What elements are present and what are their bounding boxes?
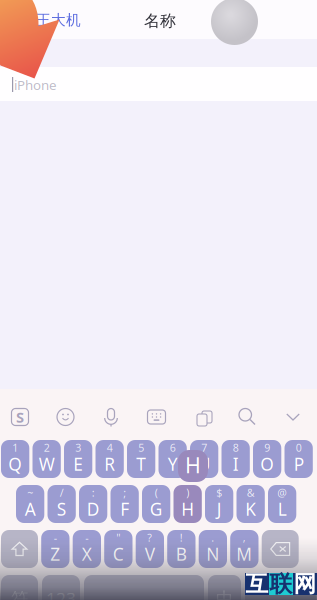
button[interactable]: & xyxy=(236,485,265,523)
button[interactable]: Keyboard tool xyxy=(6,405,34,429)
button[interactable]: ~ xyxy=(16,485,44,523)
staticText: 123 xyxy=(46,588,76,600)
staticText: 0 xyxy=(296,440,302,455)
button[interactable]: / xyxy=(47,485,76,523)
staticText: 4 xyxy=(107,440,113,455)
staticText: D xyxy=(87,498,100,521)
button[interactable]: Avatar xyxy=(211,0,258,45)
button[interactable]: 5 xyxy=(127,440,155,478)
button[interactable]: 4 xyxy=(95,440,124,478)
button[interactable]: Shift xyxy=(1,530,38,568)
staticText: X xyxy=(82,543,92,566)
staticText: 1 xyxy=(12,440,18,455)
button[interactable]: 9 xyxy=(253,440,281,478)
staticText: P xyxy=(294,453,304,476)
button[interactable]: 8 xyxy=(221,440,250,478)
staticText: ? xyxy=(147,530,152,545)
staticText: ) xyxy=(186,485,189,500)
button[interactable]: 3 xyxy=(64,440,92,478)
staticText: " xyxy=(116,530,120,545)
button[interactable]: " xyxy=(104,530,132,568)
button[interactable]: Keyboard tool xyxy=(279,405,307,429)
staticText: N xyxy=(206,543,219,566)
staticText: 符 xyxy=(11,588,28,600)
button[interactable]: ! xyxy=(167,530,195,568)
button[interactable]: - xyxy=(73,530,101,568)
staticText: 互 xyxy=(245,570,268,598)
staticText: 王大机 xyxy=(36,11,81,29)
staticText: I xyxy=(233,453,239,476)
button[interactable]: ; xyxy=(110,485,139,523)
button[interactable]: Keyboard tool xyxy=(51,405,79,429)
staticText: 网 xyxy=(293,570,316,598)
button[interactable]: , xyxy=(230,530,258,568)
staticText: Z xyxy=(50,543,60,566)
staticText: 7 xyxy=(201,440,207,455)
button[interactable]: 2 xyxy=(32,440,61,478)
button[interactable]: - xyxy=(41,530,69,568)
button[interactable]: 1 xyxy=(1,440,29,478)
staticText: H xyxy=(185,451,201,479)
staticText: 5 xyxy=(138,440,144,455)
staticText: K xyxy=(245,498,256,521)
staticText: ! xyxy=(180,530,183,545)
button[interactable]: 王大机 xyxy=(36,11,81,29)
staticText: M xyxy=(236,543,252,566)
button[interactable]: 6 xyxy=(158,440,187,478)
staticText: J xyxy=(217,498,222,521)
staticText: O xyxy=(260,453,274,476)
button[interactable]: Delete xyxy=(262,530,299,568)
staticText: S xyxy=(57,498,67,521)
staticText: T xyxy=(136,453,146,476)
button[interactable]: 0 xyxy=(284,440,313,478)
staticText: W xyxy=(39,453,55,476)
staticText: L xyxy=(278,498,287,521)
staticText: - xyxy=(54,530,57,545)
staticText: ( xyxy=(155,485,158,500)
button[interactable] xyxy=(208,575,241,600)
staticText: 8 xyxy=(233,440,239,455)
staticText: 中 xyxy=(216,588,233,600)
button[interactable]: ) xyxy=(173,485,202,523)
staticText: , xyxy=(243,530,246,545)
staticText: Y xyxy=(168,453,178,476)
staticText: S xyxy=(16,407,24,427)
staticText: & xyxy=(247,485,255,500)
staticText: 3 xyxy=(75,440,81,455)
button[interactable] xyxy=(1,575,38,600)
staticText: R xyxy=(104,453,115,476)
staticText: @ xyxy=(277,485,287,500)
staticText: V xyxy=(145,543,155,566)
staticText: U xyxy=(198,453,211,476)
staticText: A xyxy=(25,498,36,521)
button[interactable]: $ xyxy=(205,485,233,523)
button[interactable]: ? xyxy=(136,530,164,568)
staticText: 名称 xyxy=(144,11,176,31)
button[interactable]: @ xyxy=(268,485,296,523)
button[interactable] xyxy=(245,575,316,600)
button[interactable]: ( xyxy=(142,485,170,523)
button[interactable] xyxy=(84,575,204,600)
staticText: . xyxy=(211,530,214,545)
button[interactable]: . xyxy=(199,530,227,568)
staticText: C xyxy=(113,543,124,566)
staticText: 9 xyxy=(264,440,270,455)
staticText: ; xyxy=(123,485,126,500)
button[interactable]: Keyboard tool xyxy=(233,405,261,429)
staticText: 联 xyxy=(269,570,292,598)
button[interactable]: Keyboard tool xyxy=(97,405,125,429)
staticText: H xyxy=(181,498,194,521)
staticText: - xyxy=(85,530,88,545)
staticText: E xyxy=(73,453,83,476)
staticText: iPhone xyxy=(14,76,57,94)
button[interactable]: : xyxy=(79,485,107,523)
staticText: Q xyxy=(8,453,22,476)
staticText: ~ xyxy=(27,485,33,500)
staticText: B xyxy=(176,543,187,566)
staticText: 2 xyxy=(44,440,50,455)
button[interactable]: 7 xyxy=(190,440,218,478)
button[interactable]: Keyboard tool xyxy=(142,405,170,429)
button[interactable] xyxy=(42,575,80,600)
button[interactable]: Keyboard tool xyxy=(188,405,216,429)
staticText: / xyxy=(60,485,64,500)
